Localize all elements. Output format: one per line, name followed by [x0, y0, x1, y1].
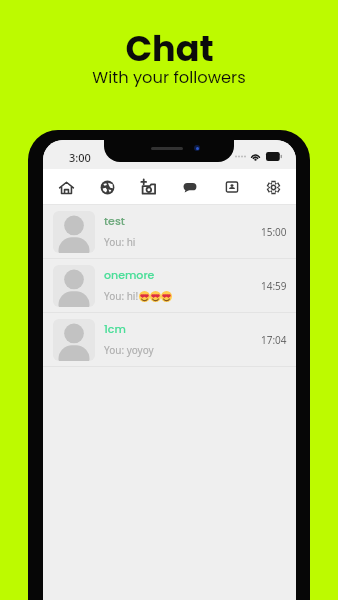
button[interactable]: Home: [51, 172, 81, 202]
staticText: You: hi: [104, 235, 136, 249]
staticText: You: hi!: [104, 289, 139, 303]
button[interactable]: test: [43, 205, 296, 258]
staticText: 1cm: [104, 321, 126, 336]
staticText: onemore: [104, 267, 155, 282]
staticText: 14:59: [261, 279, 287, 293]
staticText: Chat: [125, 24, 214, 73]
button[interactable]: Settings: [258, 172, 288, 202]
staticText: 15:00: [261, 225, 287, 239]
staticText: You: yoyoy: [104, 343, 154, 357]
staticText: 17:04: [261, 333, 287, 347]
button[interactable]: onemore: [43, 259, 296, 312]
button[interactable]: Chats: [175, 172, 205, 202]
button[interactable]: 1cm: [43, 313, 296, 366]
button[interactable]: Discover: [92, 172, 122, 202]
button[interactable]: New post: [134, 172, 164, 202]
staticText: 3:00: [69, 150, 91, 165]
button[interactable]: Contacts: [217, 172, 247, 202]
staticText: With your followers: [92, 66, 246, 89]
staticText: test: [104, 213, 125, 228]
